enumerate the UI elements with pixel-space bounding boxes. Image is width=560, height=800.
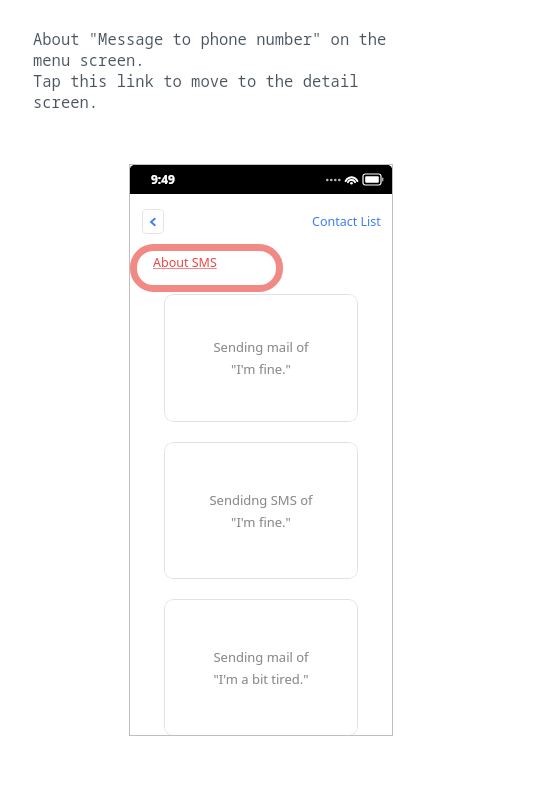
staticText: "I'm fine." xyxy=(231,513,291,531)
button[interactable]: Sending mail of xyxy=(164,599,358,736)
button[interactable]: About SMS xyxy=(153,254,217,271)
staticText: "I'm a bit tired." xyxy=(213,670,309,688)
staticText: screen. xyxy=(33,91,99,112)
button[interactable]: Back xyxy=(142,209,164,234)
staticText: About SMS xyxy=(153,254,217,271)
staticText: Tap this link to move to the detail xyxy=(33,70,359,91)
button[interactable]: Contact List xyxy=(312,213,381,230)
button[interactable]: About SMS highlight xyxy=(130,244,283,292)
staticText: menu screen. xyxy=(33,49,145,70)
staticText: 9:49 xyxy=(151,171,175,187)
staticText: Sending mail of xyxy=(213,648,309,666)
staticText: "I'm fine." xyxy=(231,360,291,378)
staticText: Contact List xyxy=(312,213,381,230)
staticText: Sendidng SMS of xyxy=(209,491,313,509)
staticText: Sending mail of xyxy=(213,338,309,356)
staticText: About "Message to phone number" on the xyxy=(33,28,387,49)
button[interactable]: Sending mail of xyxy=(164,294,358,422)
button[interactable]: Sendidng SMS of xyxy=(164,442,358,579)
